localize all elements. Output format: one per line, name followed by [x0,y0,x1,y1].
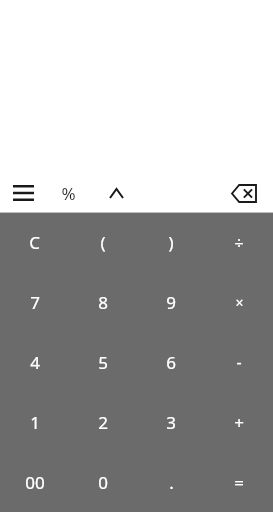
button[interactable]: Menu [1,174,45,212]
staticText: 1 [30,411,40,434]
button[interactable]: 1 [0,392,69,452]
staticText: 6 [166,351,176,374]
button[interactable]: × [205,272,273,332]
button[interactable]: 6 [137,332,205,392]
staticText: ( [100,231,106,254]
button[interactable]: C [0,213,69,272]
button[interactable]: . [137,452,205,512]
staticText: ÷ [234,232,244,254]
staticText: . [169,471,174,494]
staticText: 7 [30,291,40,314]
staticText: + [234,411,244,434]
staticText: 8 [98,291,108,314]
staticText: 0 [98,471,108,494]
button[interactable]: 9 [137,272,205,332]
staticText: 2 [98,411,108,434]
button[interactable]: Backspace [222,174,266,212]
button[interactable]: 2 [69,392,137,452]
button[interactable]: 8 [69,272,137,332]
staticText: × [235,293,244,312]
button[interactable]: Percent [46,174,90,212]
button[interactable]: 7 [0,272,69,332]
staticText: 9 [166,291,176,314]
button[interactable]: 5 [69,332,137,392]
button[interactable]: - [205,332,273,392]
button[interactable]: 3 [137,392,205,452]
staticText: % [61,182,76,205]
button[interactable]: 0 [69,452,137,512]
button[interactable]: 4 [0,332,69,392]
button[interactable]: ) [137,213,205,272]
staticText: C [29,231,40,254]
staticText: 3 [166,411,176,434]
button[interactable]: + [205,392,273,452]
staticText: 4 [30,351,40,374]
staticText: 00 [25,471,45,494]
button[interactable]: ÷ [205,213,273,272]
button[interactable]: = [205,452,273,512]
button[interactable]: ( [69,213,137,272]
staticText: = [234,471,244,494]
staticText: 5 [98,351,108,374]
staticText: - [236,351,242,373]
button[interactable]: Power [94,174,138,212]
button[interactable]: 00 [0,452,69,512]
staticText: ) [168,231,174,254]
